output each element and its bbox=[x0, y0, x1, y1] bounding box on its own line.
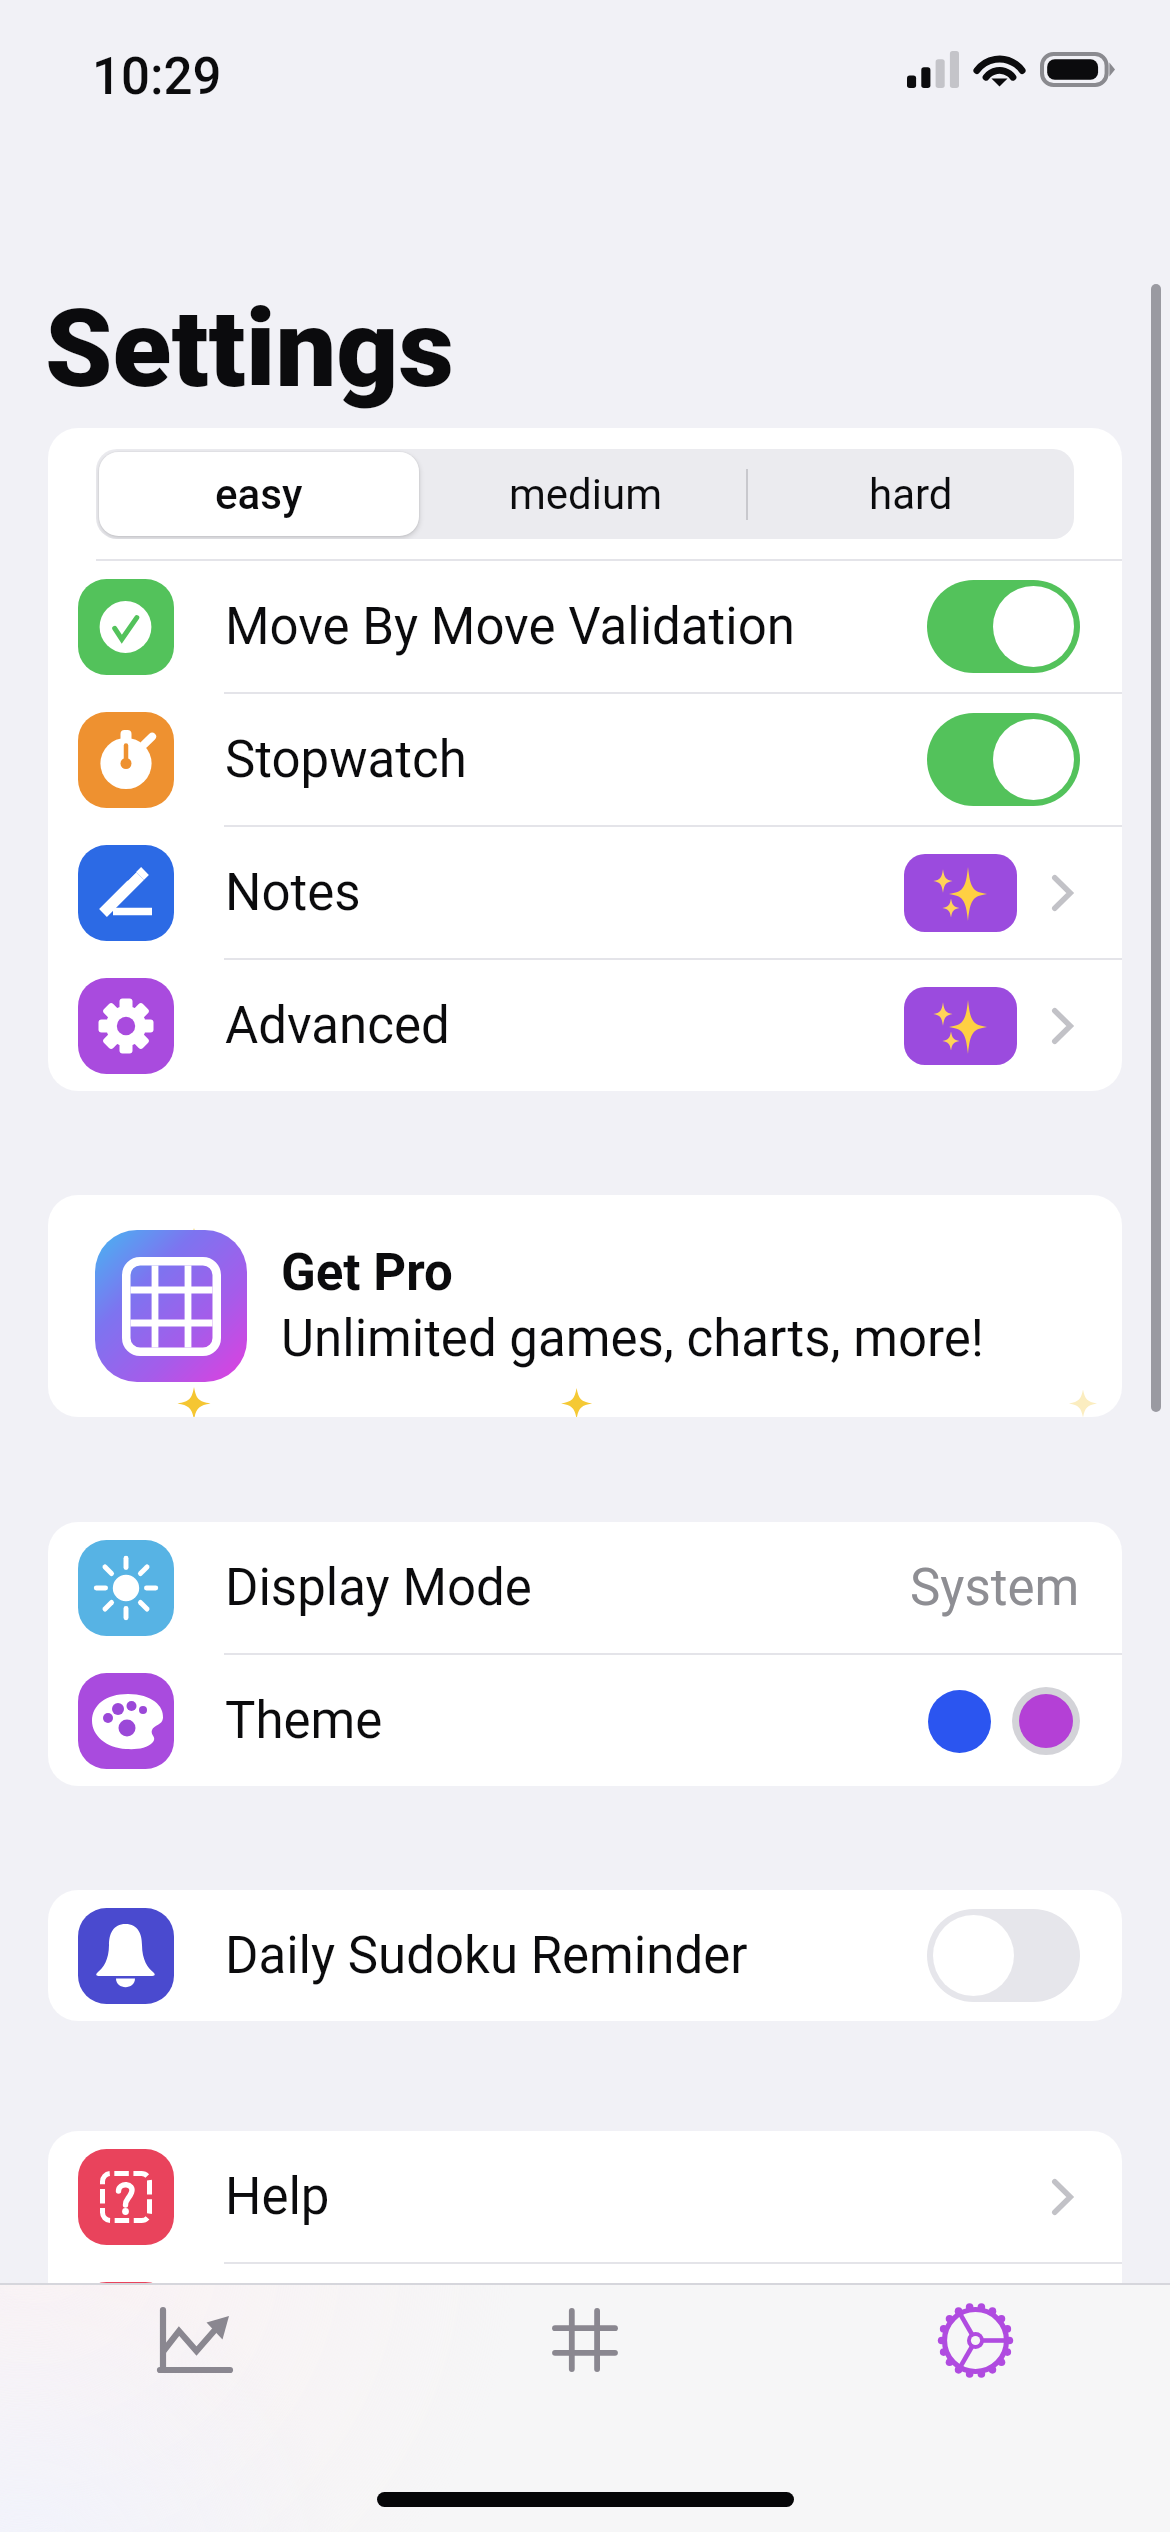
staticText: easy bbox=[215, 470, 303, 519]
button[interactable]: Settings bbox=[780, 2283, 1170, 2397]
button[interactable]: Move By Move Validation bbox=[48, 561, 1122, 692]
staticText: Settings bbox=[45, 286, 454, 413]
button[interactable]: Help bbox=[48, 2131, 1122, 2262]
button[interactable]: Display Mode bbox=[48, 1522, 1122, 1653]
staticText: Stopwatch bbox=[225, 730, 467, 790]
button[interactable]: easy bbox=[99, 452, 419, 536]
button[interactable]: hard bbox=[748, 449, 1074, 539]
button[interactable]: Notes bbox=[48, 827, 1122, 958]
staticText: Display Mode bbox=[225, 1558, 532, 1618]
button[interactable]: Purple theme bbox=[1012, 1687, 1080, 1755]
staticText: Get Pro bbox=[281, 1243, 453, 1303]
button[interactable]: Statistics bbox=[0, 2283, 390, 2397]
staticText: System bbox=[910, 1558, 1080, 1618]
other: Open bbox=[1044, 827, 1080, 958]
button[interactable]: Board bbox=[390, 2283, 780, 2397]
button[interactable]: Blue theme bbox=[928, 1690, 991, 1753]
staticText: Help bbox=[225, 2167, 330, 2227]
staticText: hard bbox=[869, 470, 953, 519]
button[interactable]: Theme bbox=[48, 1655, 1122, 1786]
button[interactable]: Advanced bbox=[48, 960, 1122, 1091]
button[interactable]: About bbox=[48, 2264, 1122, 2395]
staticText: Move By Move Validation bbox=[225, 597, 795, 657]
button[interactable]: Toggle on bbox=[927, 713, 1080, 806]
other: Open bbox=[1044, 2264, 1080, 2395]
staticText: Notes bbox=[225, 863, 361, 923]
button[interactable]: Pro bbox=[904, 987, 1017, 1065]
button[interactable]: Stopwatch bbox=[48, 694, 1122, 825]
staticText: medium bbox=[509, 470, 662, 519]
button[interactable]: Toggle off bbox=[927, 1909, 1080, 2002]
other: Open bbox=[1044, 2131, 1080, 2262]
staticText: Unlimited games, charts, more! bbox=[281, 1309, 985, 1369]
button[interactable]: Get Pro bbox=[48, 1195, 1122, 1417]
staticText: Advanced bbox=[225, 996, 450, 1056]
staticText: 10:29 bbox=[92, 47, 222, 107]
staticText: Daily Sudoku Reminder bbox=[225, 1926, 748, 1986]
button[interactable]: Toggle on bbox=[927, 580, 1080, 673]
button[interactable]: Daily Sudoku Reminder bbox=[48, 1890, 1122, 2021]
staticText: Theme bbox=[225, 1691, 383, 1751]
staticText: About bbox=[225, 2300, 361, 2360]
button[interactable]: medium bbox=[422, 449, 748, 539]
button[interactable]: Pro bbox=[904, 854, 1017, 932]
other: Open bbox=[1044, 960, 1080, 1091]
